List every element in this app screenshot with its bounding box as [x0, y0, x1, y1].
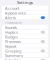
staticText: Badges — [5, 34, 18, 39]
staticText: Previews — [5, 39, 21, 44]
button[interactable]: Sounds — [2, 25, 48, 29]
staticText: Schedule — [5, 58, 20, 60]
staticText: PREFERENCES — [5, 21, 21, 25]
staticText: Settings — [17, 0, 33, 5]
button[interactable]: Previews — [2, 39, 48, 43]
staticText: Repeat — [5, 43, 16, 49]
button[interactable]: Haptics — [2, 29, 48, 34]
staticText: Grouping — [5, 48, 21, 53]
button[interactable]: Alerts — [2, 15, 48, 19]
button[interactable]: Repeat — [2, 43, 48, 48]
button[interactable]: Summary — [2, 53, 48, 57]
button[interactable]: Account — [2, 6, 48, 10]
staticText: Account — [5, 6, 19, 11]
button[interactable]: Appearance — [2, 10, 48, 15]
staticText: Sounds — [5, 25, 17, 30]
button[interactable]: Grouping — [2, 48, 48, 52]
button[interactable]: Schedule — [2, 58, 48, 60]
button[interactable]: Badges — [2, 34, 48, 38]
staticText: Appearance — [5, 10, 26, 16]
staticText: Haptics — [5, 29, 18, 35]
staticText: Alerts — [5, 15, 16, 20]
staticText: Summary — [5, 53, 23, 58]
